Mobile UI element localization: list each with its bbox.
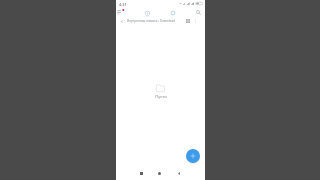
button[interactable]: Recent apps [137, 169, 146, 178]
button[interactable]: Add new [186, 149, 200, 163]
button[interactable]: More options [191, 17, 199, 25]
button[interactable]: View mode [184, 17, 192, 25]
button[interactable]: Search [192, 6, 205, 19]
button[interactable]: Up one level [118, 18, 125, 25]
button[interactable]: Protection [141, 7, 153, 19]
button[interactable]: Tabs [166, 6, 179, 19]
button[interactable]: Bookmarks [115, 6, 127, 18]
staticText: 4:31 [119, 2, 127, 7]
staticText: Пусто [155, 94, 167, 100]
button[interactable]: Home [155, 169, 164, 178]
button[interactable]: Back [174, 169, 183, 178]
button[interactable]: Внутренняя память › Download [127, 19, 176, 23]
